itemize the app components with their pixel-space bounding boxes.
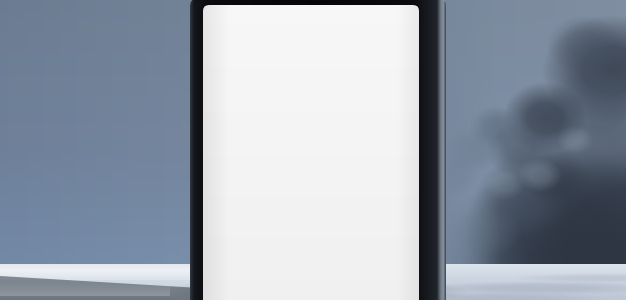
button[interactable]: Tablet mockup standing on a desk	[0, 0, 626, 300]
